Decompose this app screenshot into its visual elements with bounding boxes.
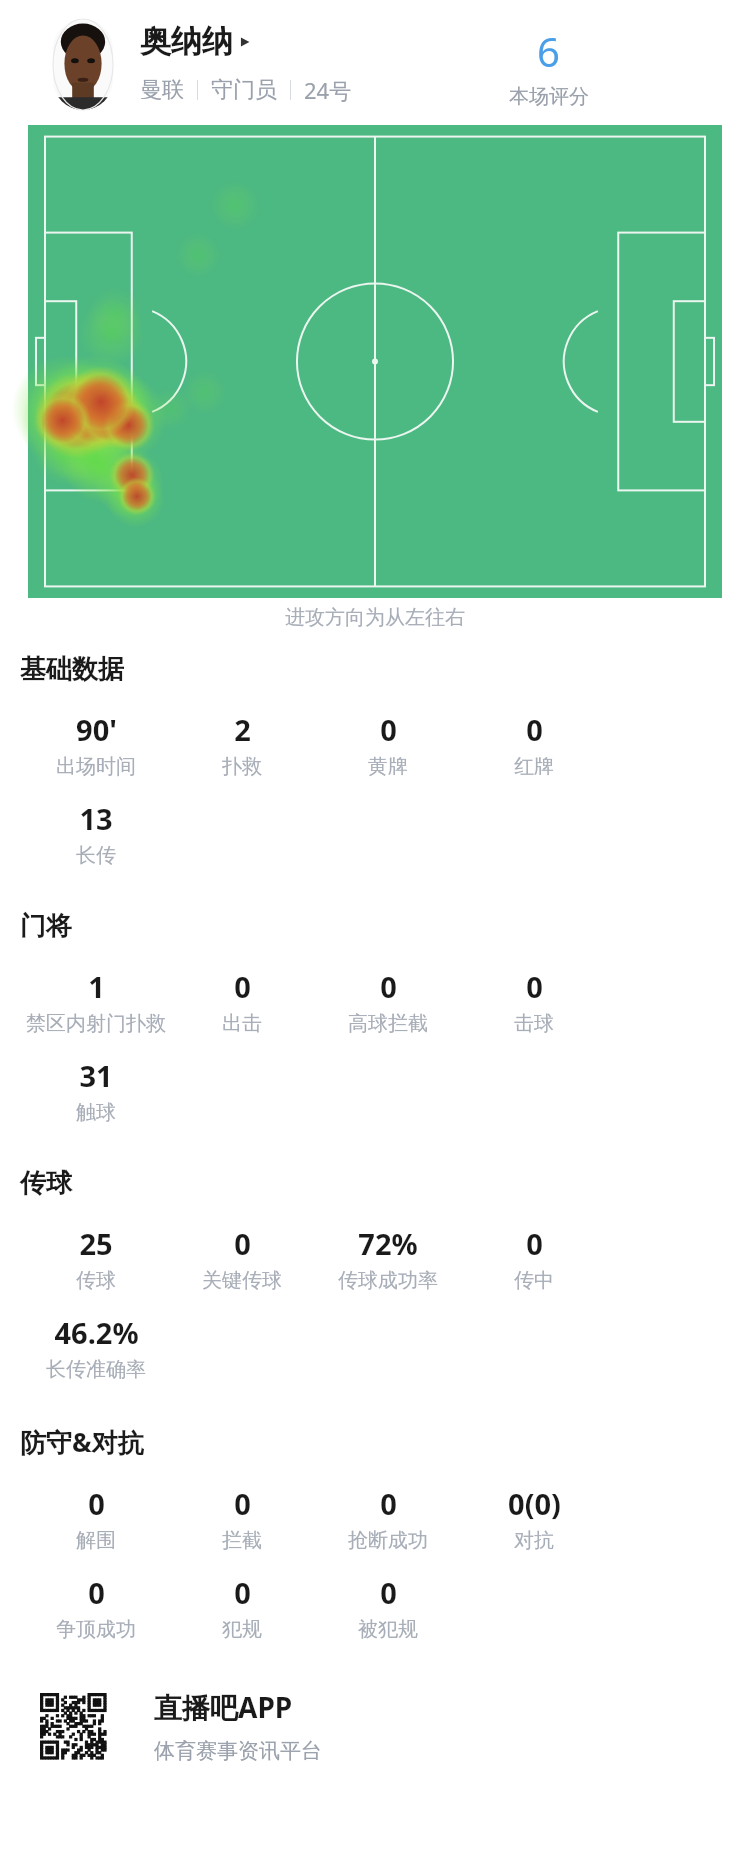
button[interactable]: 1 <box>23 967 169 1036</box>
button[interactable]: 0 <box>315 710 461 779</box>
staticText: 0 <box>380 710 397 749</box>
staticText: 0 <box>526 710 543 749</box>
staticText: 禁区内射门扑救 <box>26 1011 166 1036</box>
button[interactable]: 0 <box>461 710 607 779</box>
staticText: 犯规 <box>222 1617 262 1642</box>
staticText: 基础数据 <box>20 653 124 686</box>
staticText: 2 <box>234 710 251 749</box>
staticText: 46.2% <box>54 1313 139 1352</box>
button[interactable]: 0 <box>169 1484 315 1553</box>
staticText: 25 <box>79 1224 113 1263</box>
staticText: 高球拦截 <box>348 1011 428 1036</box>
staticText: 1 <box>88 967 105 1006</box>
staticText: 直播吧APP <box>154 1688 293 1726</box>
staticText: 门将 <box>20 910 72 943</box>
staticText: 0 <box>526 967 543 1006</box>
staticText: 被犯规 <box>358 1617 418 1642</box>
button[interactable] <box>53 19 113 110</box>
staticText: 关键传球 <box>202 1268 282 1293</box>
button[interactable]: 46.2% <box>23 1313 169 1382</box>
staticText: 长传 <box>76 843 116 868</box>
button[interactable]: 0(0) <box>461 1484 607 1553</box>
staticText: 扑救 <box>222 754 262 779</box>
staticText: 传球成功率 <box>338 1268 438 1293</box>
staticText: 长传准确率 <box>46 1357 146 1382</box>
staticText: 拦截 <box>222 1528 262 1553</box>
button[interactable]: 0 <box>23 1484 169 1553</box>
staticText: 0 <box>88 1484 105 1523</box>
staticText: 0 <box>234 967 251 1006</box>
staticText: 争顶成功 <box>56 1617 136 1642</box>
staticText: 抢断成功 <box>348 1528 428 1553</box>
button[interactable]: 奥纳纳 <box>140 22 252 61</box>
staticText: 触球 <box>76 1100 116 1125</box>
button[interactable]: 0 <box>461 967 607 1036</box>
staticText: 24号 <box>304 75 352 105</box>
staticText: 本场评分 <box>509 84 589 109</box>
staticText: 击球 <box>514 1011 554 1036</box>
staticText: 传球 <box>76 1268 116 1293</box>
staticText: 传球 <box>20 1167 72 1200</box>
staticText: 0 <box>526 1224 543 1263</box>
staticText: 曼联 <box>140 76 184 104</box>
staticText: 出击 <box>222 1011 262 1036</box>
button[interactable]: 31 <box>23 1056 169 1125</box>
staticText: 31 <box>79 1056 113 1095</box>
staticText: 传中 <box>514 1268 554 1293</box>
staticText: 体育赛事资讯平台 <box>154 1738 322 1764</box>
button[interactable]: 0 <box>169 1573 315 1642</box>
staticText: 对抗 <box>514 1528 554 1553</box>
staticText: 72% <box>358 1224 418 1263</box>
staticText: 0 <box>380 967 397 1006</box>
staticText: 防守&对抗 <box>20 1424 144 1460</box>
button[interactable]: 0 <box>315 1484 461 1553</box>
button[interactable]: 72% <box>315 1224 461 1293</box>
staticText: 奥纳纳 <box>140 22 233 61</box>
staticText: 黄牌 <box>368 754 408 779</box>
staticText: 0(0) <box>508 1484 561 1523</box>
staticText: 90' <box>76 710 117 749</box>
staticText: 0 <box>380 1573 397 1612</box>
staticText: 13 <box>79 799 113 838</box>
staticText: 0 <box>234 1484 251 1523</box>
button[interactable]: 0 <box>315 967 461 1036</box>
staticText: 进攻方向为从左往右 <box>285 605 465 630</box>
staticText: 出场时间 <box>56 754 136 779</box>
staticText: 6 <box>537 24 560 78</box>
staticText: 解围 <box>76 1528 116 1553</box>
button[interactable]: 2 <box>169 710 315 779</box>
button[interactable]: 25 <box>23 1224 169 1293</box>
staticText: 守门员 <box>211 76 277 104</box>
staticText: 0 <box>380 1484 397 1523</box>
button[interactable]: 0 <box>23 1573 169 1642</box>
button[interactable]: 0 <box>169 967 315 1036</box>
staticText: 0 <box>234 1224 251 1263</box>
button[interactable]: 0 <box>461 1224 607 1293</box>
staticText: 0 <box>234 1573 251 1612</box>
staticText: 红牌 <box>514 754 554 779</box>
button[interactable]: 90' <box>23 710 169 779</box>
staticText: 0 <box>88 1573 105 1612</box>
button[interactable]: 0 <box>169 1224 315 1293</box>
button[interactable]: 0 <box>315 1573 461 1642</box>
button[interactable]: 13 <box>23 799 169 868</box>
